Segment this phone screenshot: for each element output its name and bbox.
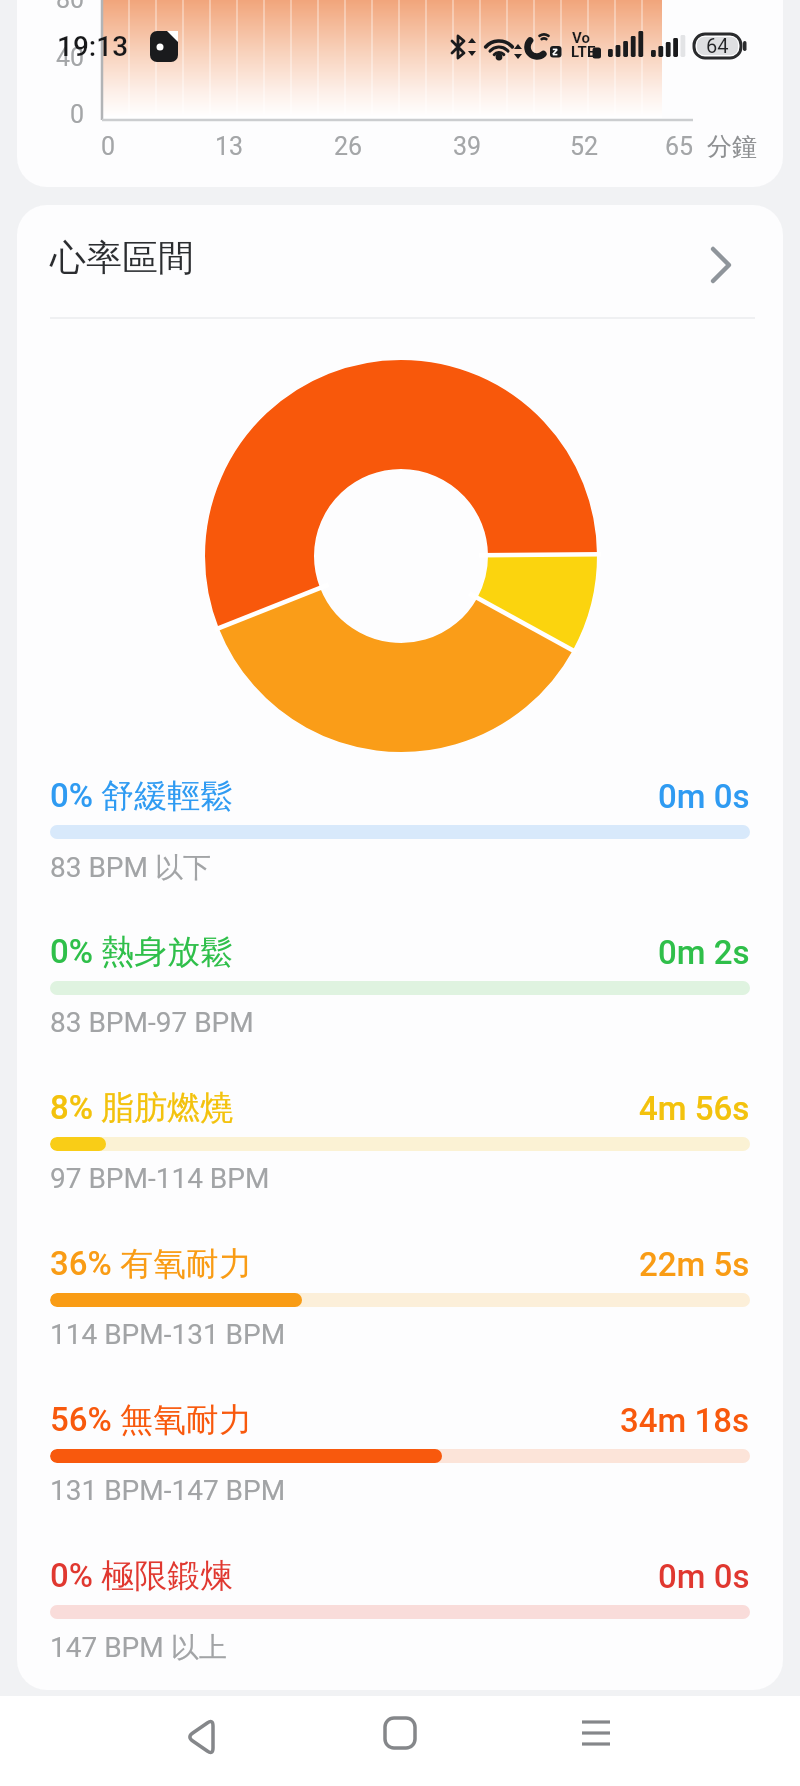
- staticText: 13: [215, 132, 244, 161]
- staticText: 4m 56s: [639, 1089, 750, 1128]
- staticText: 56% 無氧耐力: [50, 1399, 252, 1441]
- staticText: Vo: [572, 29, 590, 47]
- staticText: 19:13: [57, 30, 129, 63]
- button[interactable]: 心率區間: [17, 231, 783, 291]
- button[interactable]: [170, 1707, 230, 1767]
- staticText: 97 BPM-114 BPM: [50, 1162, 270, 1195]
- staticText: 0% 熱身放鬆: [50, 931, 234, 973]
- button[interactable]: 56% 無氧耐力: [50, 1356, 750, 1506]
- staticText: 26: [334, 132, 363, 161]
- staticText: 83 BPM 以下: [50, 850, 211, 885]
- staticText: 147 BPM 以上: [50, 1630, 227, 1665]
- staticText: 0m 2s: [658, 933, 750, 972]
- button[interactable]: 36% 有氧耐力: [50, 1200, 750, 1350]
- staticText: 64: [706, 34, 729, 57]
- staticText: 83 BPM-97 BPM: [50, 1006, 254, 1039]
- staticText: 0% 極限鍛煉: [50, 1555, 234, 1597]
- staticText: 131 BPM-147 BPM: [50, 1474, 286, 1507]
- button[interactable]: 8% 脂肪燃燒: [50, 1044, 750, 1194]
- staticText: 心率區間: [50, 235, 194, 280]
- staticText: 114 BPM-131 BPM: [50, 1318, 286, 1351]
- staticText: 40: [56, 43, 85, 72]
- button[interactable]: 0% 極限鍛煉: [50, 1512, 750, 1662]
- staticText: 34m 18s: [620, 1401, 750, 1440]
- staticText: 0: [70, 100, 85, 129]
- staticText: 0m 0s: [658, 777, 750, 816]
- button[interactable]: [566, 1707, 626, 1767]
- button[interactable]: 0% 舒緩輕鬆: [50, 732, 750, 882]
- staticText: 分鐘: [707, 131, 757, 162]
- staticText: 8% 脂肪燃燒: [50, 1087, 234, 1129]
- staticText: 52: [570, 132, 599, 161]
- staticText: 65: [665, 132, 694, 161]
- staticText: LTE: [571, 43, 596, 61]
- button[interactable]: [370, 1707, 430, 1767]
- staticText: 39: [453, 132, 482, 161]
- staticText: 0m 0s: [658, 1557, 750, 1596]
- staticText: 0: [101, 132, 116, 161]
- staticText: 36% 有氧耐力: [50, 1243, 252, 1285]
- staticText: 22m 5s: [639, 1245, 750, 1284]
- staticText: 0% 舒緩輕鬆: [50, 775, 234, 817]
- button[interactable]: 0% 熱身放鬆: [50, 888, 750, 1038]
- staticText: 80: [56, 0, 85, 14]
